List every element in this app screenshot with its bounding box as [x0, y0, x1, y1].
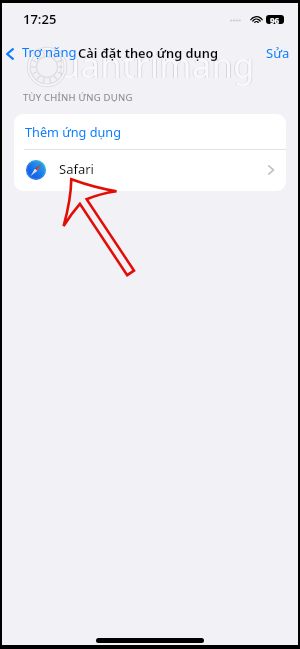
staticText: Cài đặt theo ứng dụng	[78, 44, 218, 61]
staticText: uantrimang	[59, 42, 255, 88]
staticText: uantrimang	[60, 42, 256, 88]
staticText: Thêm ứng dụng	[25, 123, 121, 140]
staticText: 96	[270, 15, 280, 24]
button[interactable]: Thêm ứng dụng	[14, 114, 286, 149]
staticText: 17:25	[23, 10, 57, 28]
staticText: Trợ năng	[22, 43, 77, 61]
staticText: uantrimang	[58, 42, 254, 88]
button[interactable]: Sửa	[262, 45, 294, 67]
staticText: TÙY CHỈNH ỨNG DỤNG	[23, 91, 133, 104]
button[interactable]: Safari	[14, 150, 286, 191]
staticText: Sửa	[266, 44, 290, 62]
button[interactable]: Trợ năng	[4, 45, 80, 67]
staticText: Safari	[59, 160, 94, 178]
